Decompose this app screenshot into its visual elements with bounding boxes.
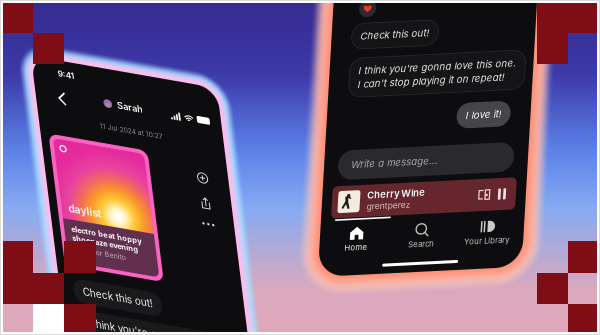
staticText: I love it!: [483, 118, 519, 129]
staticText: electro beat hoppy: [48, 218, 118, 227]
button[interactable]: Back: [43, 77, 63, 99]
staticText: Check this out!: [52, 279, 122, 291]
button[interactable]: Cherry Wine: [354, 188, 538, 220]
staticText: Cherry Wine: [389, 193, 447, 204]
staticText: daylist: [48, 196, 81, 208]
staticText: Write a message...: [371, 161, 458, 173]
staticText: Your Library: [489, 246, 534, 255]
button[interactable]: Write a message...: [358, 152, 534, 182]
staticText: I think you're gonna love this one.: [373, 68, 531, 79]
staticText: I can't stop playing it on repeat!: [373, 81, 520, 93]
staticText: grentperez: [389, 205, 433, 215]
button[interactable]: Search: [413, 229, 479, 255]
staticText: Check this out!: [373, 33, 442, 44]
staticText: 9:41: [54, 61, 71, 71]
button[interactable]: Your Library: [479, 229, 544, 255]
staticText: shoegaze evening: [48, 227, 114, 236]
staticText: I think you're gonna love this one.: [52, 310, 187, 334]
staticText: 11 Jul 2024 at 10:27: [90, 108, 153, 116]
button[interactable]: Home: [348, 229, 413, 255]
staticText: Made for Benito: [48, 238, 100, 247]
